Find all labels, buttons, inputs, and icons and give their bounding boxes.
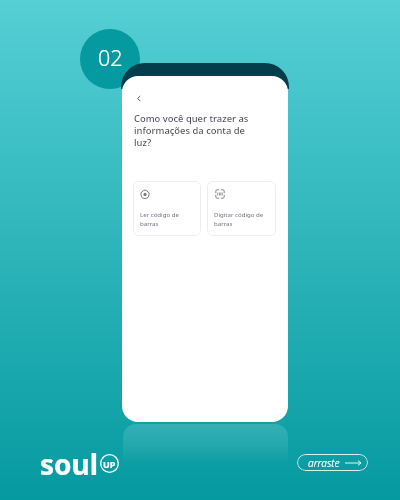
button[interactable]: Ler código de barras — [133, 181, 201, 236]
staticText: arraste — [308, 456, 340, 470]
button[interactable]: Back — [129, 89, 147, 107]
staticText: Como você quer trazer as informações da … — [134, 113, 254, 149]
button[interactable]: Digitar código de barras — [207, 181, 276, 236]
staticText: Ler código de barras — [140, 210, 184, 228]
staticText: Digitar código de barras — [214, 210, 266, 228]
staticText: 02 — [98, 43, 123, 72]
staticText: UP — [103, 458, 116, 470]
staticText: soul — [40, 445, 99, 477]
button[interactable]: arraste — [297, 454, 368, 471]
